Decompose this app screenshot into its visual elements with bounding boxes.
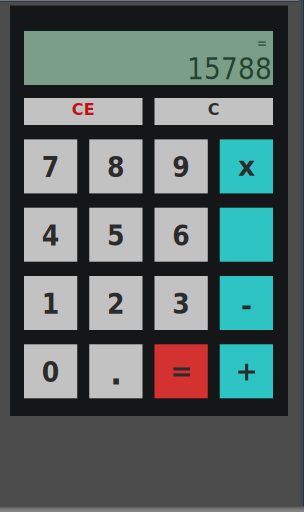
button[interactable]: 8 (89, 139, 142, 193)
staticText: 9 (172, 151, 190, 184)
staticText: . (110, 355, 122, 392)
button[interactable]: 1 (24, 276, 77, 330)
staticText: = (170, 356, 192, 387)
staticText: C (208, 100, 220, 119)
staticText: x (238, 151, 255, 182)
staticText: 15788 (187, 52, 272, 86)
button[interactable]: 3 (154, 276, 208, 330)
staticText: = (257, 36, 267, 51)
staticText: 7 (42, 151, 60, 184)
staticText: 6 (172, 219, 190, 252)
staticText: 1 (42, 288, 60, 320)
button[interactable]: 5 (89, 208, 142, 262)
staticText: CE (72, 100, 95, 119)
button[interactable]: . (89, 344, 142, 398)
staticText: + (235, 356, 257, 387)
button[interactable]: CE (24, 98, 142, 125)
button[interactable]: 4 (24, 208, 77, 262)
button[interactable]: 7 (24, 139, 77, 193)
staticText: 3 (172, 288, 190, 320)
button[interactable]: Divide (220, 208, 273, 262)
staticText: 4 (42, 219, 60, 252)
staticText: - (241, 290, 252, 321)
button[interactable]: Multiply (220, 139, 273, 193)
staticText: 5 (107, 219, 125, 252)
button[interactable]: Add (220, 344, 273, 398)
button[interactable]: C (154, 98, 273, 125)
button[interactable]: 2 (89, 276, 142, 330)
staticText: 0 (42, 356, 60, 389)
button[interactable]: 6 (154, 208, 208, 262)
button[interactable]: 0 (24, 344, 77, 398)
staticText: 2 (107, 288, 125, 320)
button[interactable]: Subtract (220, 276, 273, 330)
button[interactable]: Equals (154, 344, 208, 398)
staticText: 8 (107, 151, 125, 184)
button[interactable]: 9 (154, 139, 208, 193)
